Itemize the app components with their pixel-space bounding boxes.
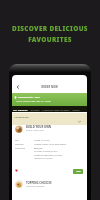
staticText: DISCOVER DELICIOUS [12, 24, 88, 33]
button[interactable]: MY ORDERS [13, 108, 28, 111]
staticText: ORDER NOW [12, 85, 87, 88]
staticText: LIMITED TIME OFFERS [42, 108, 70, 111]
staticText: CHEESE,STRIPS WHOLE,BOURBON [34, 143, 67, 146]
staticText: OFFERS [30, 108, 40, 111]
button[interactable]: OFFERS [30, 108, 40, 111]
button[interactable]: PIZZA [72, 108, 80, 111]
staticText: MY ORDERS [13, 108, 28, 111]
staticText: Delivering to : Null [18, 96, 40, 99]
staticText: BUILD YOUR OWN [26, 125, 52, 129]
staticText: CHEDDAR PEPPERONI WHOLE [34, 154, 63, 157]
staticText: TOPPING CHOICES [26, 185, 45, 188]
button[interactable]: Back [14, 83, 22, 91]
button[interactable]: BUILD YOUR OWN [12, 124, 87, 133]
staticText: PIZZA [72, 108, 80, 111]
button[interactable]: LIMITED TIME OFFERS [42, 108, 70, 111]
staticText: 123 W 43rd St New York NY 10036 [16, 100, 51, 103]
button[interactable]: TOPPING CHOICES [12, 178, 87, 188]
staticText: TOPPING CHOICES [26, 181, 52, 185]
button[interactable]: Delivering to : Null [12, 93, 87, 107]
staticText: CHICKEN WHOLE,ONION [34, 150, 58, 153]
staticText: FAVOURITES [28, 35, 72, 44]
staticText: LARGE 16 SLICES [34, 139, 50, 142]
staticText: Size [15, 139, 19, 142]
staticText: ADD [76, 170, 81, 173]
button[interactable]: ADD [73, 169, 83, 174]
staticText: BBQ,RED [34, 147, 43, 150]
staticText: Toppings [15, 143, 24, 146]
button[interactable]: Favourite [14, 168, 19, 173]
staticText: MEATBALLS WHOLE [34, 157, 53, 160]
staticText: FAVOURITE [14, 115, 29, 118]
staticText: BUILD YOUR OWN [26, 129, 45, 132]
staticText: Customize [15, 147, 25, 150]
